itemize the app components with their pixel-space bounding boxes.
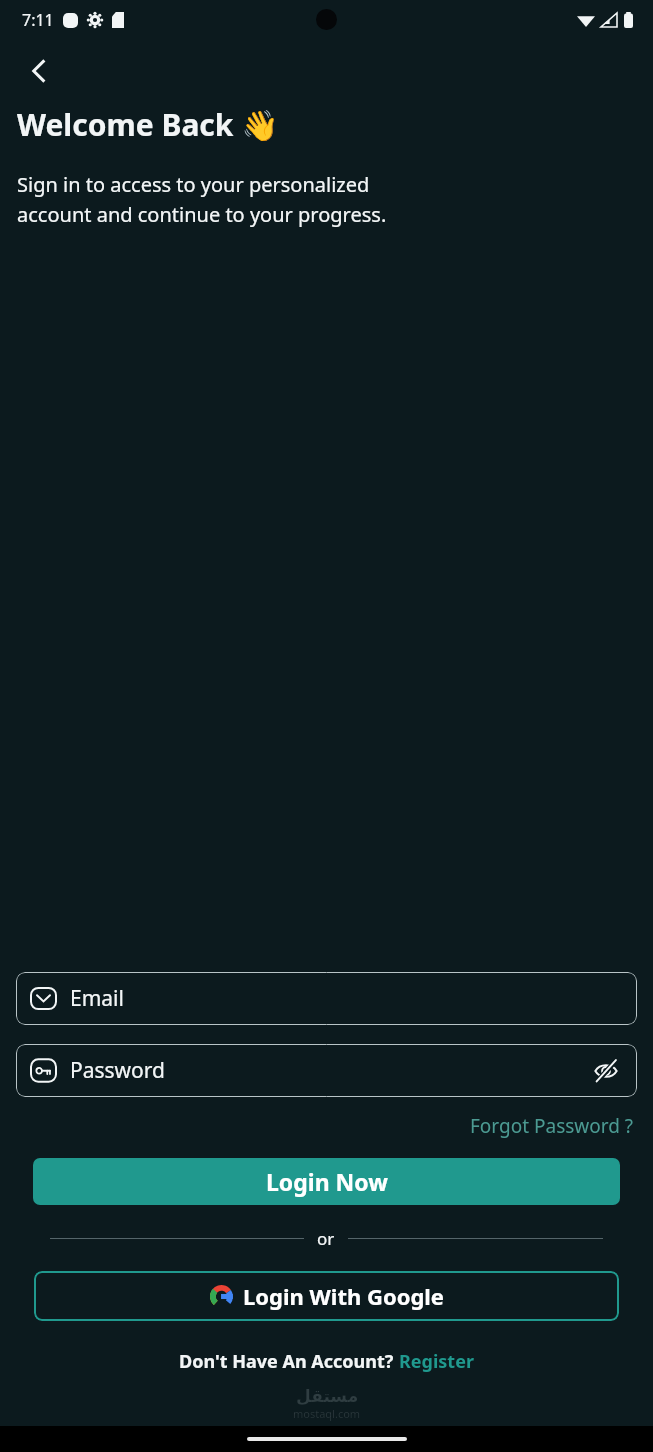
staticText: Email [70,984,124,1013]
button[interactable]: Forgot Password ? [466,1108,638,1144]
staticText: مستقل [296,1386,359,1406]
staticText: or [317,1227,335,1250]
button[interactable]: Show password [591,1056,621,1086]
staticText: Forgot Password ? [470,1113,634,1139]
button[interactable]: Login Now [33,1158,620,1205]
staticText: 7:11 [22,9,54,31]
button[interactable]: Back [18,50,60,92]
staticText: mostaql.com [293,1406,361,1421]
staticText: Don't Have An Account? [179,1349,399,1374]
button[interactable]: Login With Google [34,1271,619,1321]
staticText: Register [399,1349,474,1374]
button[interactable]: Don't Have An Account? [175,1345,478,1378]
staticText: Welcome Back 👋 [17,104,279,145]
button[interactable]: Password [16,1044,637,1097]
staticText: Login Now [266,1166,388,1197]
button[interactable]: Email [16,972,637,1025]
staticText: Sign in to access to your personalized a… [17,171,387,228]
staticText: Login With Google [243,1281,444,1311]
staticText: Password [70,1056,165,1085]
